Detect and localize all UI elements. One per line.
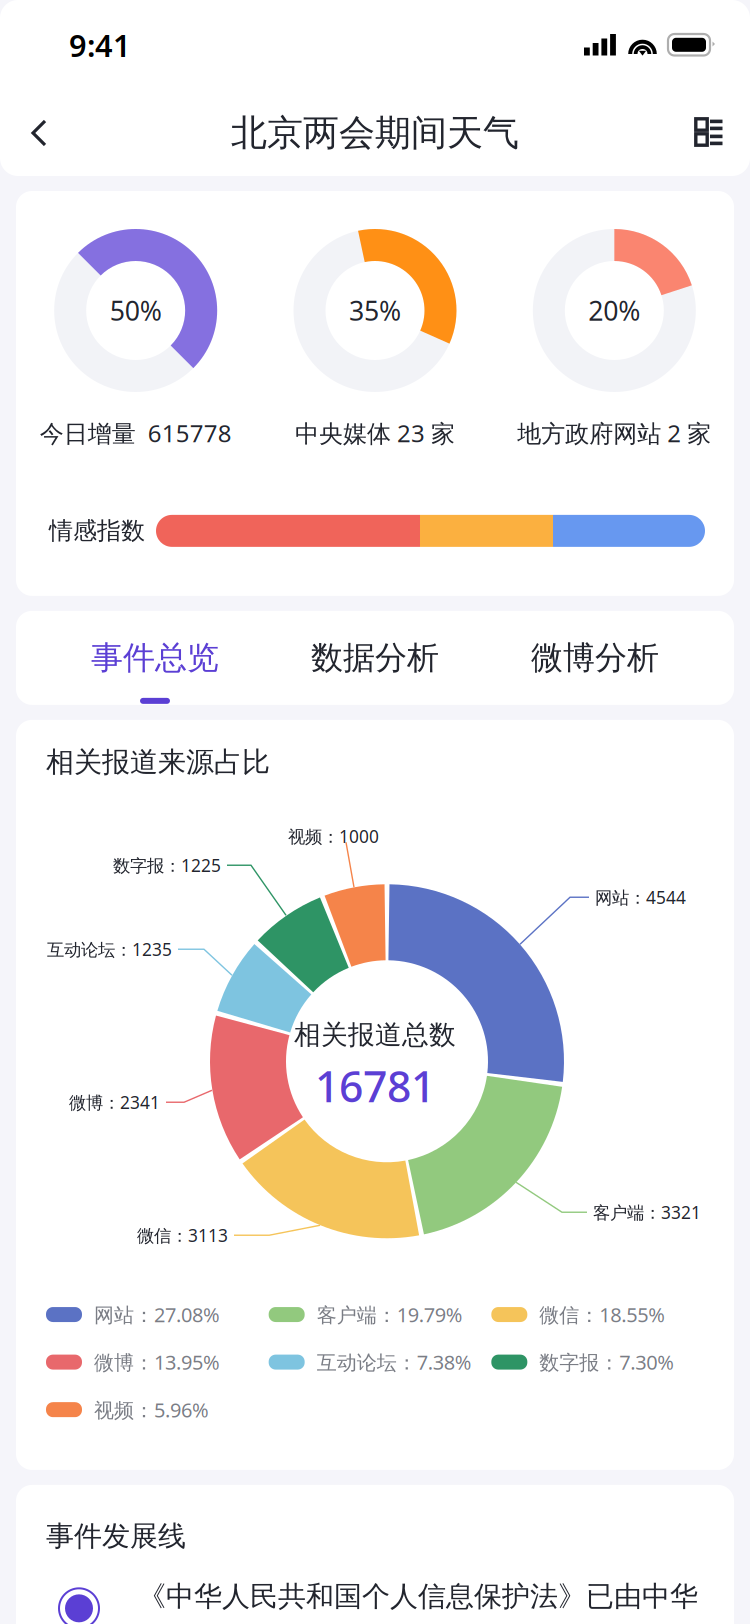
staticText: 9:41 xyxy=(69,25,131,65)
staticText: 网站：27.08% xyxy=(94,1301,220,1328)
staticText: 20% xyxy=(588,293,640,328)
staticText: 互动论坛：1235 xyxy=(47,938,172,961)
staticText: 微博分析 xyxy=(531,638,659,677)
staticText: 视频：1000 xyxy=(288,825,379,848)
staticText: 数据分析 xyxy=(311,638,439,677)
staticText: 微博：2341 xyxy=(69,1091,160,1114)
staticText: 数字报：1225 xyxy=(113,854,221,877)
staticText: 数字报：7.30% xyxy=(539,1349,674,1375)
button[interactable]: 数据分析 xyxy=(265,611,485,705)
staticText: 微信：18.55% xyxy=(539,1301,665,1328)
staticText: 视频：5.96% xyxy=(94,1396,209,1423)
staticText: 50% xyxy=(110,293,162,328)
staticText: 微博：13.95% xyxy=(94,1349,220,1375)
staticText: 北京两会期间天气 xyxy=(231,111,519,155)
staticText: 35% xyxy=(349,293,401,328)
staticText: 客户端：19.79% xyxy=(317,1301,463,1328)
staticText: 网站：4544 xyxy=(595,886,686,909)
button[interactable]: Back xyxy=(14,107,66,159)
staticText: 地方政府网站 2 家 xyxy=(517,417,711,449)
staticText: 客户端：3321 xyxy=(593,1201,701,1224)
staticText: 16781 xyxy=(315,1057,435,1114)
staticText: 今日增量 615778 xyxy=(40,417,232,449)
staticText: 相关报道总数 xyxy=(294,1019,456,1051)
staticText: 微信：3113 xyxy=(137,1224,228,1247)
button[interactable]: List options xyxy=(676,107,728,159)
staticText: 中央媒体 23 家 xyxy=(295,417,455,449)
staticText: 互动论坛：7.38% xyxy=(317,1349,472,1375)
staticText: 情感指数 xyxy=(49,516,145,546)
staticText: 事件总览 xyxy=(91,638,219,677)
staticText: 相关报道来源占比 xyxy=(46,745,270,779)
staticText: 《中华人民共和国个人信息保护法》已由中华 xyxy=(138,1579,698,1614)
staticText: 事件发展线 xyxy=(46,1519,186,1553)
button[interactable]: 微博分析 xyxy=(485,611,705,705)
button[interactable]: 事件总览 xyxy=(45,611,265,705)
